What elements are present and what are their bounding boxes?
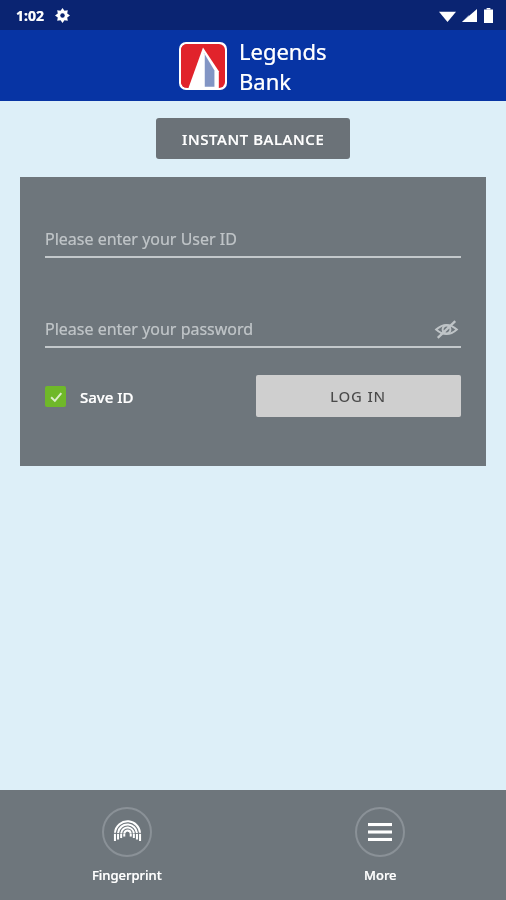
- button[interactable]: Save ID: [45, 386, 134, 407]
- button[interactable]: Please enter your User ID: [45, 222, 461, 256]
- staticText: Fingerprint: [92, 866, 162, 884]
- staticText: Save ID: [80, 387, 134, 407]
- staticText: Please enter your User ID: [45, 228, 237, 250]
- button[interactable]: Fingerprint: [74, 801, 180, 890]
- button[interactable]: INSTANT BALANCE: [156, 118, 350, 159]
- button[interactable]: More: [337, 801, 423, 890]
- staticText: LOG IN: [330, 386, 387, 406]
- button[interactable]: Show password: [431, 314, 461, 344]
- staticText: INSTANT BALANCE: [182, 129, 325, 149]
- staticText: 1:02: [16, 6, 44, 25]
- staticText: Legends: [239, 36, 327, 66]
- staticText: More: [364, 866, 397, 884]
- staticText: Bank: [239, 66, 291, 96]
- button[interactable]: LOG IN: [256, 375, 461, 417]
- button[interactable]: Please enter your password: [45, 312, 461, 346]
- staticText: Please enter your password: [45, 318, 254, 340]
